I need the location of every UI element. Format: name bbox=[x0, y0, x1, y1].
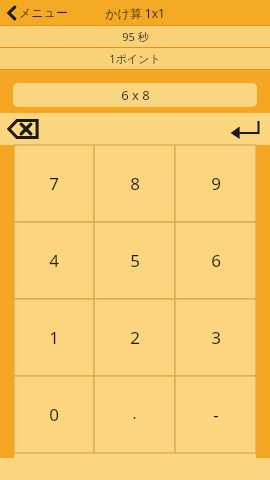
staticText: 4 bbox=[49, 249, 59, 272]
staticText: 3 bbox=[211, 326, 221, 349]
button[interactable]: Backspace bbox=[6, 116, 40, 142]
staticText: 6 bbox=[211, 249, 221, 272]
staticText: 1 bbox=[49, 326, 59, 349]
button[interactable]: 1 bbox=[14, 299, 94, 376]
staticText: 1ポイント bbox=[109, 51, 161, 66]
button[interactable]: 6 x 8 bbox=[13, 83, 257, 107]
staticText: 7 bbox=[49, 172, 59, 195]
button[interactable]: - bbox=[175, 376, 256, 453]
button[interactable]: メニュー bbox=[5, 3, 70, 22]
staticText: - bbox=[213, 403, 219, 426]
staticText: かけ算 1x1 bbox=[105, 5, 165, 21]
staticText: メニュー bbox=[19, 5, 68, 20]
button[interactable]: 1ポイント bbox=[0, 48, 270, 69]
staticText: 6 x 8 bbox=[121, 86, 150, 104]
button[interactable]: 5 bbox=[94, 222, 175, 299]
button[interactable]: 7 bbox=[14, 145, 94, 222]
button[interactable]: 9 bbox=[175, 145, 256, 222]
staticText: 9 bbox=[211, 172, 221, 195]
staticText: 5 bbox=[130, 249, 140, 272]
button[interactable]: 0 bbox=[14, 376, 94, 453]
button[interactable]: 4 bbox=[14, 222, 94, 299]
staticText: 8 bbox=[130, 172, 140, 195]
button[interactable]: 8 bbox=[94, 145, 175, 222]
button[interactable]: 2 bbox=[94, 299, 175, 376]
button[interactable]: . bbox=[94, 376, 175, 453]
button[interactable]: 3 bbox=[175, 299, 256, 376]
staticText: . bbox=[132, 403, 137, 423]
button[interactable]: Enter bbox=[227, 116, 263, 142]
staticText: 2 bbox=[130, 326, 140, 349]
button[interactable]: 6 bbox=[175, 222, 256, 299]
staticText: 95 秒 bbox=[122, 29, 149, 44]
staticText: 0 bbox=[49, 403, 59, 426]
button[interactable]: 95 秒 bbox=[0, 26, 270, 47]
